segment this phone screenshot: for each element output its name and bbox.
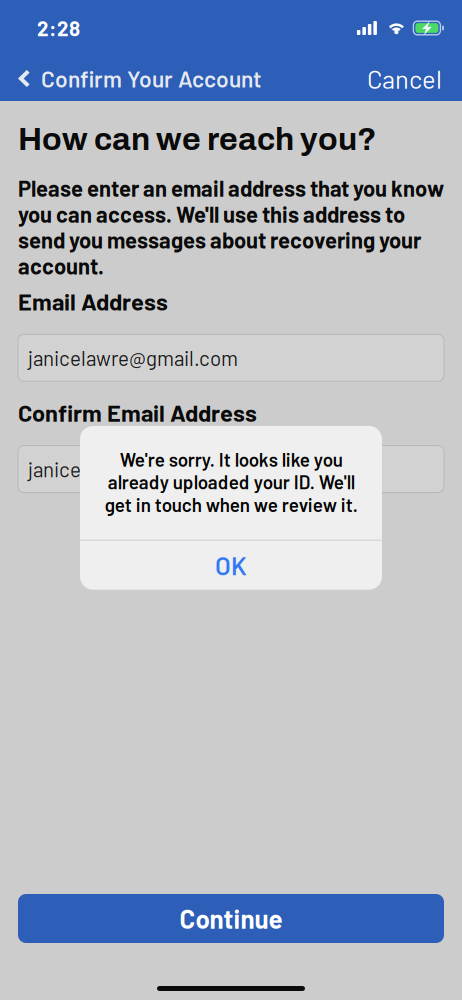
button[interactable]: Confirm Your Account bbox=[0, 60, 262, 97]
button[interactable]: OK bbox=[80, 541, 382, 590]
staticText: Please enter an email address that you k… bbox=[18, 175, 444, 279]
staticText: 2:28 bbox=[37, 16, 80, 40]
staticText: Continue bbox=[179, 903, 282, 934]
staticText: Cancel bbox=[367, 63, 442, 94]
button[interactable]: Cancel bbox=[367, 58, 462, 99]
staticText: How can we reach you? bbox=[18, 122, 377, 157]
staticText: Email Address bbox=[18, 287, 168, 315]
staticText: Confirm Email Address bbox=[18, 398, 257, 426]
staticText: janicelawre@gmail.com bbox=[28, 457, 238, 481]
staticText: We're sorry. It looks like you already u… bbox=[104, 448, 357, 516]
staticText: OK bbox=[215, 550, 247, 580]
staticText: janicelawre@gmail.com bbox=[28, 345, 238, 370]
button[interactable]: Continue bbox=[18, 894, 444, 943]
staticText: Confirm Your Account bbox=[41, 65, 262, 92]
